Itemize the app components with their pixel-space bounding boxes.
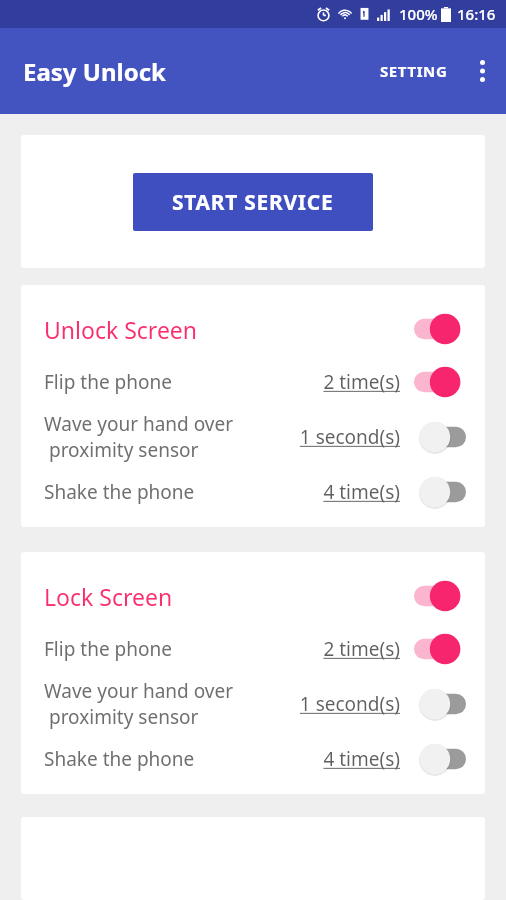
- staticText: 1 second(s): [299, 691, 400, 717]
- staticText: Unlock Screen: [44, 314, 414, 345]
- staticText: 4 time(s): [323, 479, 400, 505]
- staticText: SETTING: [380, 61, 448, 81]
- button[interactable]: Wave your hand over: [44, 411, 466, 463]
- button[interactable]: Off: [414, 742, 466, 776]
- staticText: Shake the phone: [44, 479, 195, 505]
- staticText: 2 time(s): [323, 636, 400, 662]
- button[interactable]: START SERVICE: [133, 173, 373, 231]
- button[interactable]: Flip the phone: [44, 632, 466, 666]
- staticText: 2 time(s): [323, 369, 400, 395]
- staticText: proximity sensor: [44, 437, 199, 463]
- staticText: Lock Screen: [44, 581, 414, 612]
- staticText: Flip the phone: [44, 369, 172, 395]
- staticText: START SERVICE: [172, 188, 334, 217]
- staticText: proximity sensor: [44, 704, 199, 730]
- button[interactable]: On: [414, 365, 466, 399]
- button[interactable]: On: [414, 579, 466, 613]
- button[interactable]: Off: [414, 475, 466, 509]
- staticText: Wave your hand over: [44, 411, 234, 437]
- button[interactable]: On: [414, 312, 466, 346]
- staticText: 4 time(s): [323, 746, 400, 772]
- button[interactable]: Unlock Screen: [44, 305, 466, 353]
- staticText: Easy Unlock: [23, 55, 166, 88]
- staticText: Flip the phone: [44, 636, 172, 662]
- button[interactable]: More options: [458, 47, 506, 95]
- button[interactable]: SETTING: [370, 49, 458, 93]
- button[interactable]: Lock Screen: [44, 572, 466, 620]
- button[interactable]: On: [414, 632, 466, 666]
- staticText: 1 second(s): [299, 424, 400, 450]
- button[interactable]: Wave your hand over: [44, 678, 466, 730]
- button[interactable]: Shake the phone: [44, 475, 466, 509]
- button[interactable]: Shake the phone: [44, 742, 466, 776]
- staticText: 100%: [399, 4, 438, 24]
- button[interactable]: Off: [414, 420, 466, 454]
- staticText: 16:16: [457, 4, 496, 24]
- button[interactable]: Off: [414, 687, 466, 721]
- staticText: Wave your hand over: [44, 678, 234, 704]
- button[interactable]: Flip the phone: [44, 365, 466, 399]
- staticText: Shake the phone: [44, 746, 195, 772]
